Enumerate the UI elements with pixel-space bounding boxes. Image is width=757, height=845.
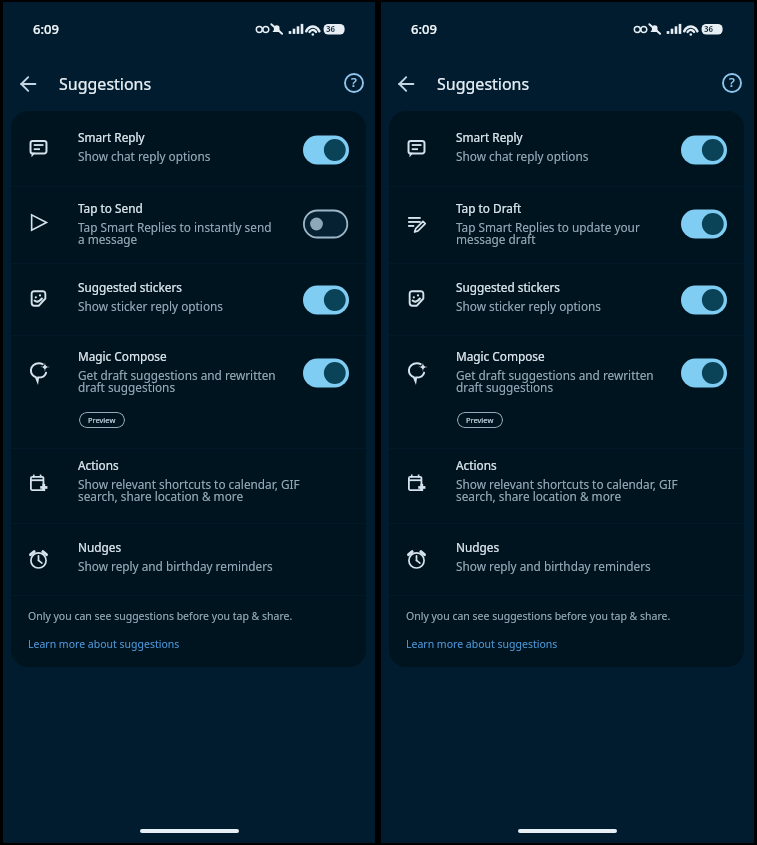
button[interactable]: Actions: [389, 443, 744, 501]
staticText: Learn more about suggestions: [28, 637, 180, 651]
staticText: Only you can see suggestions before you …: [28, 609, 293, 623]
staticText: Show reply and birthday reminders: [456, 558, 651, 574]
button[interactable]: Toggle on: [681, 135, 727, 165]
staticText: ?: [351, 73, 357, 91]
staticText: 6:09: [33, 20, 59, 38]
staticText: Tap to Draft: [456, 200, 522, 216]
button[interactable]: Magic Compose: [11, 334, 366, 443]
staticText: Actions: [456, 457, 497, 473]
staticText: Magic Compose: [78, 348, 167, 364]
staticText: search, share location & more: [78, 488, 244, 504]
staticText: Tap Smart Replies to instantly send: [78, 219, 272, 235]
button[interactable]: Learn more about suggestions: [406, 637, 558, 651]
staticText: Get draft suggestions and rewritten: [78, 367, 276, 383]
button[interactable]: Smart Reply: [11, 115, 366, 173]
button[interactable]: Magic Compose: [389, 334, 744, 443]
staticText: Show relevant shortcuts to calendar, GIF: [456, 476, 678, 492]
staticText: ?: [729, 73, 735, 91]
staticText: Smart Reply: [78, 129, 145, 145]
button[interactable]: Help: [718, 69, 746, 97]
button[interactable]: Toggle on: [303, 358, 349, 388]
staticText: 6:09: [411, 20, 437, 38]
button[interactable]: Help: [340, 69, 368, 97]
staticText: Suggested stickers: [456, 279, 560, 295]
button[interactable]: Smart Reply: [389, 115, 744, 173]
button[interactable]: Tap to Draft: [389, 186, 744, 244]
staticText: Learn more about suggestions: [406, 637, 558, 651]
staticText: draft suggestions: [456, 379, 554, 395]
button[interactable]: Suggested stickers: [11, 265, 366, 323]
staticText: message draft: [456, 231, 536, 247]
staticText: Smart Reply: [456, 129, 523, 145]
button[interactable]: Suggested stickers: [389, 265, 744, 323]
staticText: Preview: [466, 415, 494, 425]
button[interactable]: Toggle on: [303, 285, 349, 315]
button[interactable]: Toggle on: [681, 285, 727, 315]
button[interactable]: Back: [390, 68, 422, 100]
staticText: 36: [326, 23, 336, 34]
staticText: 36: [704, 23, 714, 34]
staticText: Show chat reply options: [78, 148, 211, 164]
staticText: Suggestions: [437, 73, 530, 95]
staticText: Only you can see suggestions before you …: [406, 609, 671, 623]
staticText: Actions: [78, 457, 119, 473]
button[interactable]: Back: [12, 68, 44, 100]
button[interactable]: Nudges: [11, 525, 366, 583]
button[interactable]: Tap to Send: [11, 186, 366, 244]
button[interactable]: Toggle on: [681, 358, 727, 388]
staticText: Tap to Send: [78, 200, 143, 216]
button[interactable]: Toggle on: [303, 135, 349, 165]
button[interactable]: Nudges: [389, 525, 744, 583]
staticText: Show sticker reply options: [78, 298, 223, 314]
button[interactable]: Learn more about suggestions: [28, 637, 180, 651]
staticText: Nudges: [456, 539, 500, 555]
staticText: Show relevant shortcuts to calendar, GIF: [78, 476, 300, 492]
staticText: Suggested stickers: [78, 279, 182, 295]
staticText: search, share location & more: [456, 488, 622, 504]
button[interactable]: Preview: [79, 412, 125, 428]
staticText: Suggestions: [59, 73, 152, 95]
button[interactable]: Toggle off: [303, 209, 349, 239]
staticText: Magic Compose: [456, 348, 545, 364]
staticText: Get draft suggestions and rewritten: [456, 367, 654, 383]
staticText: a message: [78, 231, 138, 247]
staticText: Preview: [88, 415, 116, 425]
staticText: Tap Smart Replies to update your: [456, 219, 640, 235]
button[interactable]: Actions: [11, 443, 366, 501]
button[interactable]: Preview: [457, 412, 503, 428]
staticText: Nudges: [78, 539, 122, 555]
staticText: Show chat reply options: [456, 148, 589, 164]
button[interactable]: Toggle on: [681, 209, 727, 239]
staticText: Show sticker reply options: [456, 298, 601, 314]
staticText: draft suggestions: [78, 379, 176, 395]
staticText: Show reply and birthday reminders: [78, 558, 273, 574]
